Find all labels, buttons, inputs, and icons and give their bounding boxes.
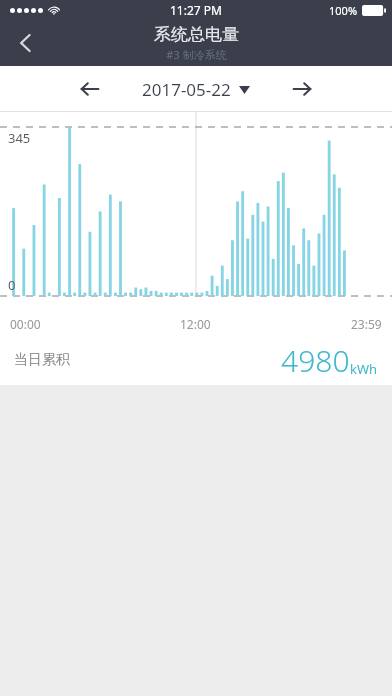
staticText: 100% bbox=[329, 3, 358, 18]
button[interactable]: 2017-05-22 bbox=[136, 72, 256, 107]
staticText: 23:59 bbox=[351, 316, 382, 332]
staticText: 12:00 bbox=[180, 316, 211, 332]
staticText: 0 bbox=[8, 276, 16, 294]
staticText: 11:27 PM bbox=[170, 2, 222, 18]
staticText: 345 bbox=[8, 129, 31, 147]
staticText: 2017-05-22 bbox=[142, 78, 231, 101]
button[interactable]: Previous day bbox=[68, 67, 112, 111]
staticText: 00:00 bbox=[10, 316, 41, 332]
button[interactable]: 当日累积 bbox=[0, 336, 392, 384]
staticText: 当日累积 bbox=[14, 351, 70, 369]
staticText: kWh bbox=[350, 360, 378, 378]
staticText: 4980 bbox=[281, 340, 350, 381]
button[interactable]: Next day bbox=[280, 67, 324, 111]
staticText: #3 制冷系统 bbox=[166, 47, 227, 62]
button[interactable]: Back bbox=[0, 20, 52, 66]
staticText: 系统总电量 bbox=[154, 24, 239, 45]
